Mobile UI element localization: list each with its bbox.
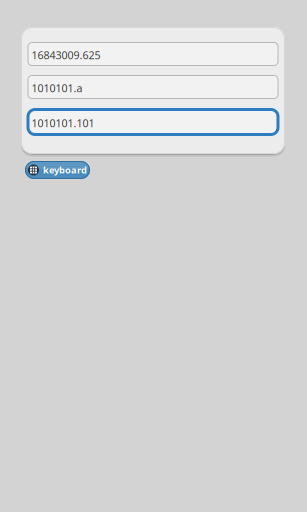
button[interactable]: 16843009.625 [27,42,278,66]
button[interactable]: 1010101.a [27,75,278,99]
button[interactable]: 1010101.101 [26,108,279,136]
button[interactable]: keyboard [25,161,90,179]
staticText: 16843009.625 [31,48,100,62]
staticText: 1010101.a [31,81,82,95]
staticText: 1010101.101 [31,116,94,130]
staticText: keyboard [43,164,87,176]
